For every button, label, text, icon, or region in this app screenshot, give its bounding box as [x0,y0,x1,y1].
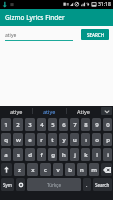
staticText: Türkçe [47,182,62,188]
button[interactable]: k [81,148,90,161]
staticText: p [106,136,110,144]
staticText: Search [95,182,110,188]
button[interactable]: y [59,133,68,146]
staticText: j [74,151,76,159]
button[interactable]: 0 [103,118,112,131]
button[interactable]: s [13,148,23,161]
button[interactable]: Backspace [101,163,112,176]
staticText: w [16,136,21,144]
staticText: g [51,151,55,159]
staticText: Sym [3,182,12,188]
button[interactable]: z [14,163,25,176]
button[interactable]: Sym [1,178,14,191]
button[interactable]: b [65,163,75,176]
button[interactable]: 7 [70,118,79,131]
staticText: f [40,151,43,159]
staticText: 1 [4,121,8,129]
staticText: d [28,151,32,159]
staticText: 6 [62,121,66,129]
staticText: . [86,181,88,188]
button[interactable]: SEARCH [81,29,109,40]
staticText: o [95,136,99,144]
staticText: 4 [40,121,44,129]
button[interactable]: 6 [59,118,68,131]
staticText: s [17,151,20,159]
button[interactable]: a [1,148,11,161]
staticText: q [4,136,8,144]
button[interactable]: j [70,148,79,161]
staticText: i [107,151,109,159]
button[interactable]: v [53,163,63,176]
staticText: l [96,151,98,159]
staticText: x [31,166,35,174]
staticText: t [51,136,54,144]
button[interactable]: Atiye [67,106,100,116]
button[interactable]: 4 [37,118,46,131]
button[interactable]: 3 [25,118,35,131]
staticText: atiye [43,108,56,115]
button[interactable]: x [27,163,38,176]
button[interactable]: m [89,163,99,176]
button[interactable]: ı [81,133,90,146]
staticText: 0 [106,121,110,129]
staticText: e [28,136,32,144]
button[interactable]: q [1,133,11,146]
button[interactable]: c [40,163,51,176]
button[interactable]: Settings [16,178,25,191]
button[interactable]: r [37,133,46,146]
button[interactable]: h [59,148,68,161]
staticText: m [91,166,97,174]
button[interactable]: atiye [0,106,32,116]
button[interactable]: n [77,163,87,176]
staticText: c [44,166,47,174]
button[interactable]: 2 [13,118,23,131]
staticText: r [40,136,43,144]
staticText: u [73,136,77,144]
button[interactable]: o [92,133,101,146]
staticText: 2 [16,121,20,129]
staticText: 31:18 [98,1,111,8]
staticText: SEARCH [87,32,104,38]
button[interactable]: Search [93,178,112,191]
staticText: atiye [5,32,17,39]
button[interactable]: 8 [81,118,90,131]
staticText: b [68,166,72,174]
staticText: z [18,166,21,174]
staticText: a [4,151,8,159]
button[interactable]: e [25,133,35,146]
button[interactable]: i [103,148,112,161]
button[interactable]: Shift [1,163,12,176]
staticText: y [62,136,66,144]
button[interactable]: l [92,148,101,161]
staticText: n [80,166,84,174]
staticText: 5 [51,121,55,129]
staticText: h [62,151,66,159]
button[interactable]: u [70,133,79,146]
button[interactable]: d [25,148,35,161]
staticText: 8 [84,121,88,129]
button[interactable]: g [48,148,57,161]
button[interactable]: 9 [92,118,101,131]
button[interactable]: Türkçe [27,178,81,191]
button[interactable]: w [13,133,23,146]
staticText: 7 [73,121,77,129]
button[interactable]: atiye [33,106,66,116]
staticText: Atiye [77,108,90,115]
button[interactable]: t [48,133,57,146]
button[interactable]: f [37,148,46,161]
staticText: atiye [10,108,23,115]
button[interactable]: 1 [1,118,11,131]
button[interactable]: Period [83,178,91,191]
staticText: ı [85,136,87,144]
staticText: v [56,166,60,174]
staticText: k [84,151,88,159]
staticText: 9 [95,121,99,129]
button[interactable]: More suggestions [101,107,112,115]
staticText: 3 [28,121,32,129]
button[interactable]: p [103,133,112,146]
staticText: Gizmo Lyrics Finder [5,13,65,22]
button[interactable]: 5 [48,118,57,131]
